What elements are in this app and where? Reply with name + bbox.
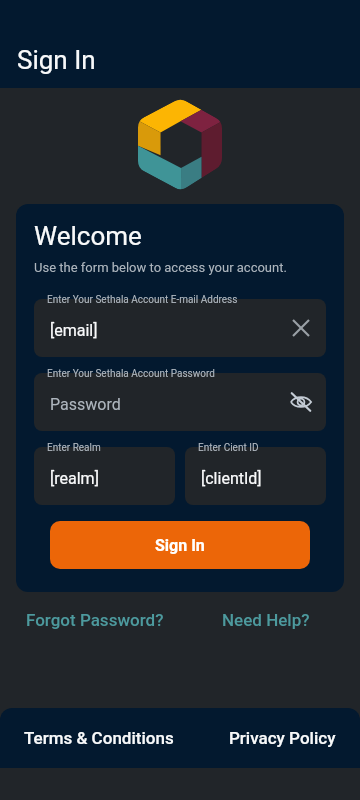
staticText: Enter Your Sethala Account E-mail Addres… <box>47 294 238 306</box>
staticText: Enter Realm <box>47 442 101 454</box>
staticText: Privacy Policy <box>229 728 336 748</box>
button[interactable]: Show password <box>284 385 318 419</box>
staticText: Sign In <box>17 45 96 75</box>
button[interactable]: Forgot Password? <box>14 604 176 636</box>
button[interactable]: Need Help? <box>210 604 322 636</box>
staticText: Need Help? <box>222 610 310 630</box>
button[interactable]: Clear text <box>284 311 318 345</box>
staticText: [realm] <box>50 469 167 488</box>
staticText: Password <box>50 395 284 414</box>
other: Sethala logo <box>138 98 222 191</box>
button[interactable]: Terms & Conditions <box>12 720 186 756</box>
button[interactable]: [clientId] <box>185 447 326 505</box>
staticText: [email] <box>50 321 284 340</box>
staticText: Enter Cient ID <box>198 442 259 454</box>
button[interactable]: Sign In <box>50 521 310 569</box>
staticText: [clientId] <box>201 469 318 488</box>
button[interactable]: Password <box>34 373 326 431</box>
staticText: Welcome <box>34 221 142 251</box>
button[interactable]: [email] <box>34 299 326 357</box>
button[interactable]: [realm] <box>34 447 175 505</box>
staticText: Forgot Password? <box>26 610 164 630</box>
staticText: Sign In <box>155 536 205 555</box>
button[interactable]: Privacy Policy <box>217 720 348 756</box>
staticText: Use the form below to access your accoun… <box>34 260 287 275</box>
staticText: Enter Your Sethala Account Password <box>47 368 215 380</box>
staticText: Terms & Conditions <box>24 728 174 748</box>
